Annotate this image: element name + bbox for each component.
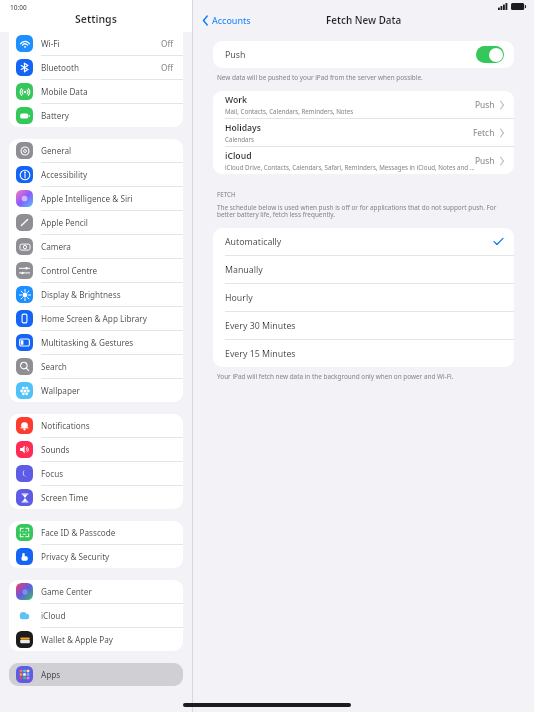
staticText: Search (41, 361, 174, 372)
staticText: Display & Brightness (41, 289, 174, 300)
staticText: Work (225, 94, 248, 106)
button[interactable]: Manually (213, 256, 514, 284)
staticText: Every 15 Minutes (225, 348, 503, 360)
staticText: The schedule below is used when push is … (217, 203, 510, 219)
staticText: Fetch New Data (326, 14, 402, 27)
staticText: Apps (41, 669, 61, 680)
staticText: Push (225, 49, 476, 61)
staticText: Face ID & Passcode (41, 527, 174, 538)
staticText: 10:00 (10, 3, 27, 12)
button[interactable]: General (9, 139, 183, 162)
button[interactable]: Display & Brightness (9, 283, 183, 306)
staticText: Control Centre (41, 265, 174, 276)
button[interactable]: Push toggle, on (476, 46, 504, 63)
button[interactable]: iCloud (9, 604, 183, 627)
staticText: iCloud Drive, Contacts, Calendars, Safar… (225, 163, 475, 171)
staticText: Sounds (41, 444, 174, 455)
staticText: Calendars (225, 135, 255, 143)
button[interactable]: Battery (9, 104, 183, 127)
staticText: New data will be pushed to your iPad fro… (217, 73, 423, 82)
staticText: Your iPad will fetch new data in the bac… (217, 372, 454, 381)
button[interactable]: Search (9, 355, 183, 378)
staticText: Mail, Contacts, Calendars, Reminders, No… (225, 107, 354, 115)
button[interactable]: Sounds (9, 438, 183, 461)
staticText: Bluetooth (41, 62, 161, 73)
button[interactable]: Accounts (201, 13, 253, 27)
staticText: Off (161, 38, 174, 49)
staticText: Every 30 Minutes (225, 320, 503, 332)
staticText: Camera (41, 241, 174, 252)
button[interactable]: Privacy & Security (9, 545, 183, 568)
button[interactable]: Accessibility (9, 163, 183, 186)
button[interactable]: Mobile Data (9, 80, 183, 103)
staticText: Wallpaper (41, 385, 174, 396)
staticText: Screen Time (41, 492, 174, 503)
button[interactable]: Game Center (9, 580, 183, 603)
button[interactable]: Hourly (213, 284, 514, 312)
staticText: General (41, 145, 174, 156)
staticText: iCloud (41, 610, 174, 621)
button[interactable]: Apple Intelligence & Siri (9, 187, 183, 210)
staticText: Apple Intelligence & Siri (41, 193, 174, 204)
button[interactable]: Wallet & Apple Pay (9, 628, 183, 651)
staticText: Apple Pencil (41, 217, 174, 228)
staticText: Privacy & Security (41, 551, 174, 562)
button[interactable]: Holidays (213, 119, 514, 147)
staticText: Push (475, 99, 495, 110)
staticText: Battery (41, 110, 174, 121)
staticText: Manually (225, 264, 503, 276)
button[interactable]: Bluetooth (9, 56, 183, 79)
button[interactable]: Focus (9, 462, 183, 485)
button[interactable]: Wallpaper (9, 379, 183, 402)
button[interactable]: Multitasking & Gestures (9, 331, 183, 354)
staticText: Game Center (41, 586, 174, 597)
button[interactable]: Screen Time (9, 486, 183, 509)
staticText: Holidays (225, 122, 262, 134)
staticText: Push (475, 155, 495, 166)
staticText: Multitasking & Gestures (41, 337, 174, 348)
button[interactable]: Control Centre (9, 259, 183, 282)
staticText: Fetch (473, 127, 495, 138)
button[interactable]: Apple Pencil (9, 211, 183, 234)
staticText: Focus (41, 468, 174, 479)
staticText: FETCH (217, 190, 236, 198)
button[interactable]: Work (213, 91, 514, 119)
staticText: Mobile Data (41, 86, 174, 97)
button[interactable]: Wi-Fi (9, 32, 183, 55)
staticText: Accessibility (41, 169, 174, 180)
staticText: Home Screen & App Library (41, 313, 174, 324)
staticText: Wallet & Apple Pay (41, 634, 174, 645)
button[interactable]: Automatically (213, 228, 514, 256)
button[interactable]: Camera (9, 235, 183, 258)
staticText: Settings (75, 12, 117, 26)
button[interactable]: Home Screen & App Library (9, 307, 183, 330)
button[interactable]: Apps (9, 663, 183, 686)
staticText: Notifications (41, 420, 174, 431)
staticText: iCloud (225, 150, 252, 162)
button[interactable]: Every 30 Minutes (213, 312, 514, 340)
staticText: Accounts (212, 14, 251, 26)
button[interactable]: Face ID & Passcode (9, 521, 183, 544)
staticText: Wi-Fi (41, 38, 161, 49)
staticText: Automatically (225, 236, 494, 248)
button[interactable]: Every 15 Minutes (213, 340, 514, 367)
button[interactable]: Push (213, 41, 514, 68)
staticText: Hourly (225, 292, 503, 304)
staticText: Off (161, 62, 174, 73)
button[interactable]: iCloud (213, 147, 514, 174)
button[interactable]: Notifications (9, 414, 183, 437)
